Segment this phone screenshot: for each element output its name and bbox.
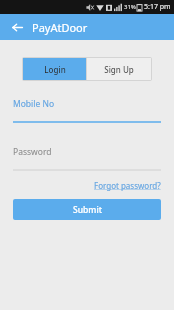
button[interactable]: Forgot password? (94, 180, 161, 191)
staticText: Submit (73, 204, 102, 216)
staticText: Password (13, 146, 52, 158)
staticText: Forgot password? (94, 180, 161, 191)
staticText: 5:17 pm (144, 2, 171, 12)
staticText: PayAtDoor (32, 20, 88, 35)
staticText: Sign Up (104, 64, 134, 75)
staticText: 31% (124, 3, 136, 11)
button[interactable]: Mobile No (13, 98, 161, 123)
button[interactable]: Back (8, 18, 26, 36)
button[interactable]: Submit (13, 199, 161, 220)
button[interactable]: Login (23, 58, 86, 80)
button[interactable]: Sign Up (87, 58, 151, 80)
button[interactable]: Password (13, 146, 161, 171)
staticText: Login (44, 64, 66, 75)
staticText: Mobile No (13, 98, 55, 110)
